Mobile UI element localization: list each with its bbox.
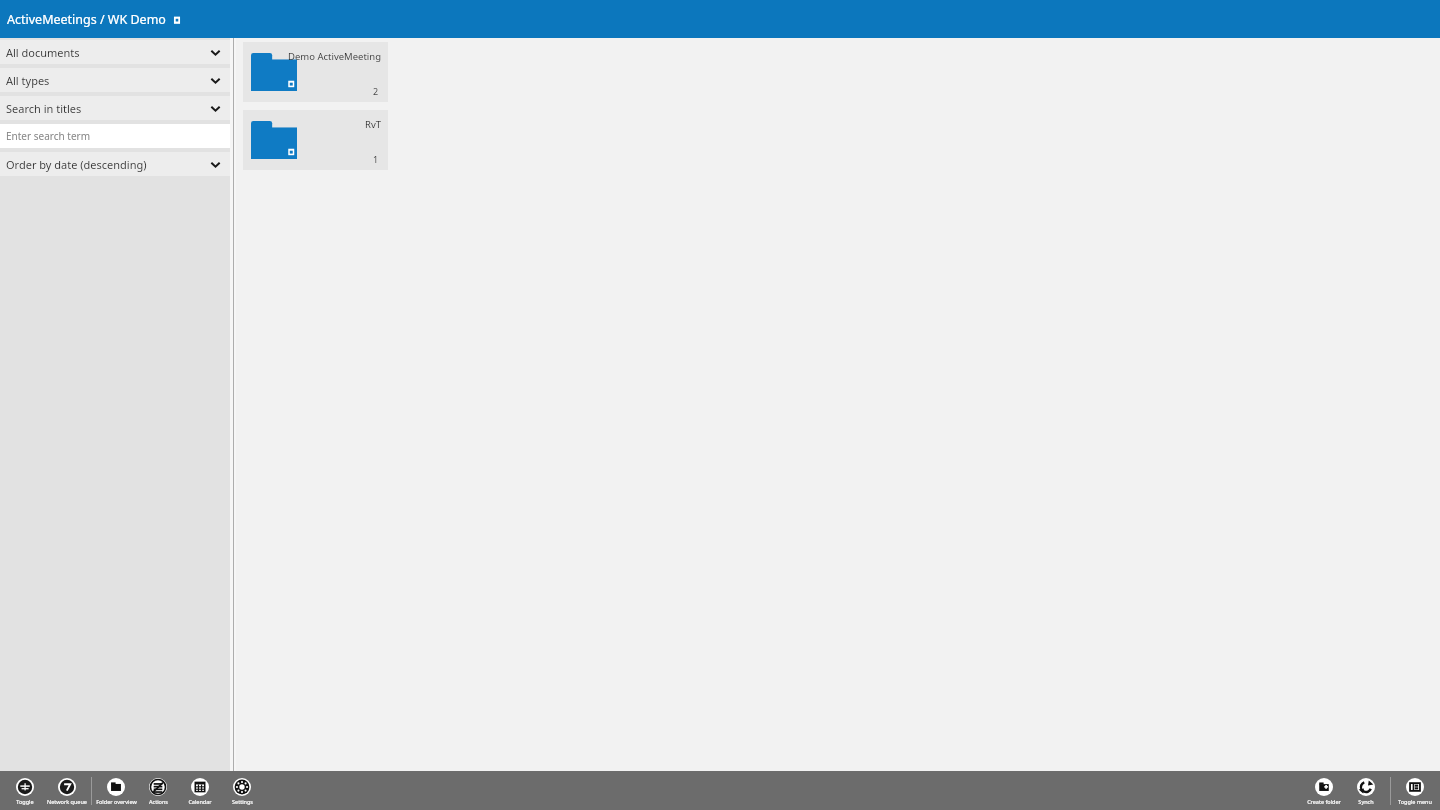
button[interactable]: Calendar (179, 771, 221, 810)
staticText: 1 (373, 153, 379, 165)
staticText: Network queue (47, 798, 87, 805)
button[interactable]: Create folder (1303, 771, 1345, 810)
button[interactable]: Toggle airplane... (4, 771, 46, 810)
button[interactable]: Synch (1345, 771, 1387, 810)
staticText: Create folder (1307, 798, 1341, 805)
button[interactable]: Network queue (46, 771, 88, 810)
button[interactable]: Order by date (descending) (0, 152, 230, 176)
button[interactable]: Folder overview (95, 771, 137, 810)
button[interactable]: Enter search term (0, 124, 230, 148)
staticText: Demo ActiveMeeting (287, 50, 381, 63)
button[interactable]: RvT (243, 110, 388, 170)
staticText: Synch (1358, 798, 1374, 805)
staticText: Settings (232, 798, 253, 805)
button[interactable]: All types (0, 68, 230, 92)
button[interactable]: Search in titles (0, 96, 230, 120)
staticText: All types (6, 73, 50, 88)
button[interactable]: All documents (0, 40, 230, 64)
staticText: Folder overview (96, 798, 137, 805)
staticText: Calendar (188, 798, 212, 805)
staticText: 2 (373, 85, 379, 97)
button[interactable]: Settings (221, 771, 263, 810)
staticText: Enter search term (6, 129, 90, 143)
staticText: Order by date (descending) (6, 157, 147, 172)
button[interactable]: Toggle menu (1394, 771, 1436, 810)
button[interactable]: Demo ActiveMeeting (243, 42, 388, 102)
staticText: Toggle menu (1398, 798, 1432, 805)
staticText: Actions (149, 798, 168, 805)
staticText: ActiveMeetings / WK Demo (7, 11, 166, 28)
staticText: All documents (6, 45, 80, 60)
staticText: RvT (364, 118, 381, 131)
staticText: Toggle airplane... (4, 798, 46, 805)
staticText: Search in titles (6, 101, 82, 116)
button[interactable]: Actions (137, 771, 179, 810)
